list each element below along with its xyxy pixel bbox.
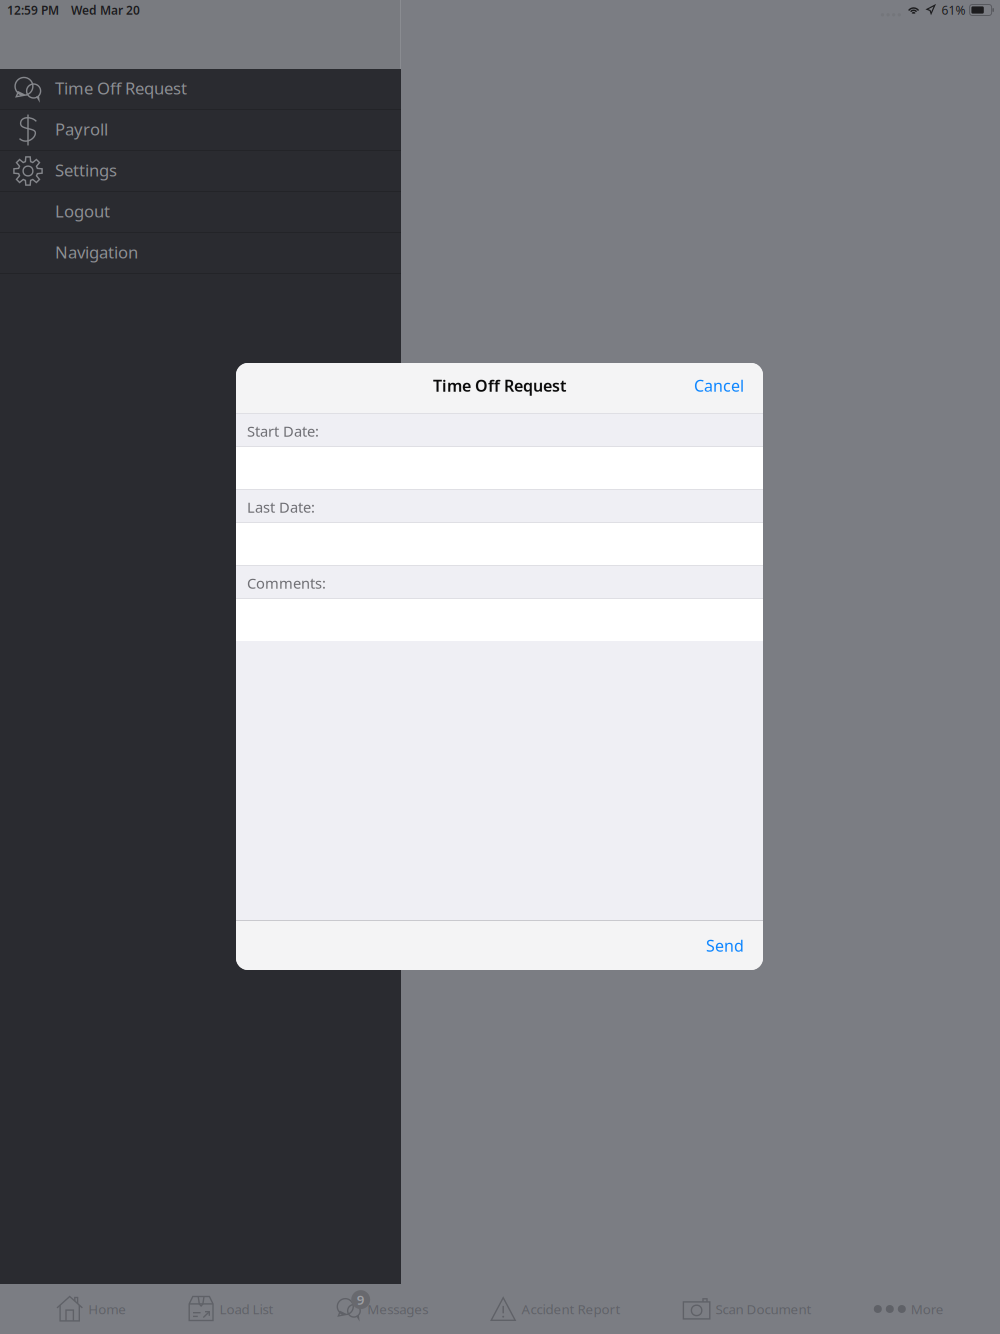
staticText: More [911, 1300, 944, 1318]
button[interactable]: Send [706, 920, 763, 971]
button[interactable]: Navigation [0, 233, 401, 274]
staticText: Load List [219, 1300, 273, 1318]
staticText: Start Date: [247, 421, 319, 441]
staticText: 61% [942, 2, 966, 18]
staticText: Wed Mar 20 [71, 2, 140, 18]
staticText: 12:59 PM [7, 2, 59, 18]
button[interactable]: Home [50, 1284, 132, 1334]
staticText: Accident Report [521, 1300, 620, 1318]
staticText: Time Off Request [55, 77, 187, 99]
staticText: Comments: [247, 573, 326, 593]
staticText: Scan Document [716, 1300, 812, 1318]
button[interactable]: Logout [0, 192, 401, 233]
button[interactable]: Accident Report [484, 1284, 626, 1334]
button[interactable]: More [868, 1284, 950, 1334]
staticText: Messages [367, 1300, 428, 1318]
button[interactable]: Time Off Request [0, 69, 401, 110]
staticText: Payroll [55, 118, 108, 140]
button[interactable]: Scan Document [677, 1284, 818, 1334]
button[interactable]: Load List [182, 1284, 279, 1334]
button[interactable]: Settings [0, 151, 401, 192]
staticText: 9 [357, 1291, 365, 1308]
staticText: Home [88, 1300, 126, 1318]
staticText: Last Date: [247, 497, 315, 517]
staticText: Navigation [55, 241, 138, 263]
staticText: Send [706, 935, 744, 956]
staticText: Cancel [694, 375, 744, 396]
button[interactable]: 9 [330, 1284, 434, 1334]
button[interactable]: Cancel [694, 364, 763, 412]
button[interactable]: Payroll [0, 110, 401, 151]
staticText: Logout [55, 200, 110, 222]
staticText: Settings [55, 159, 117, 181]
staticText: Time Off Request [433, 375, 566, 396]
